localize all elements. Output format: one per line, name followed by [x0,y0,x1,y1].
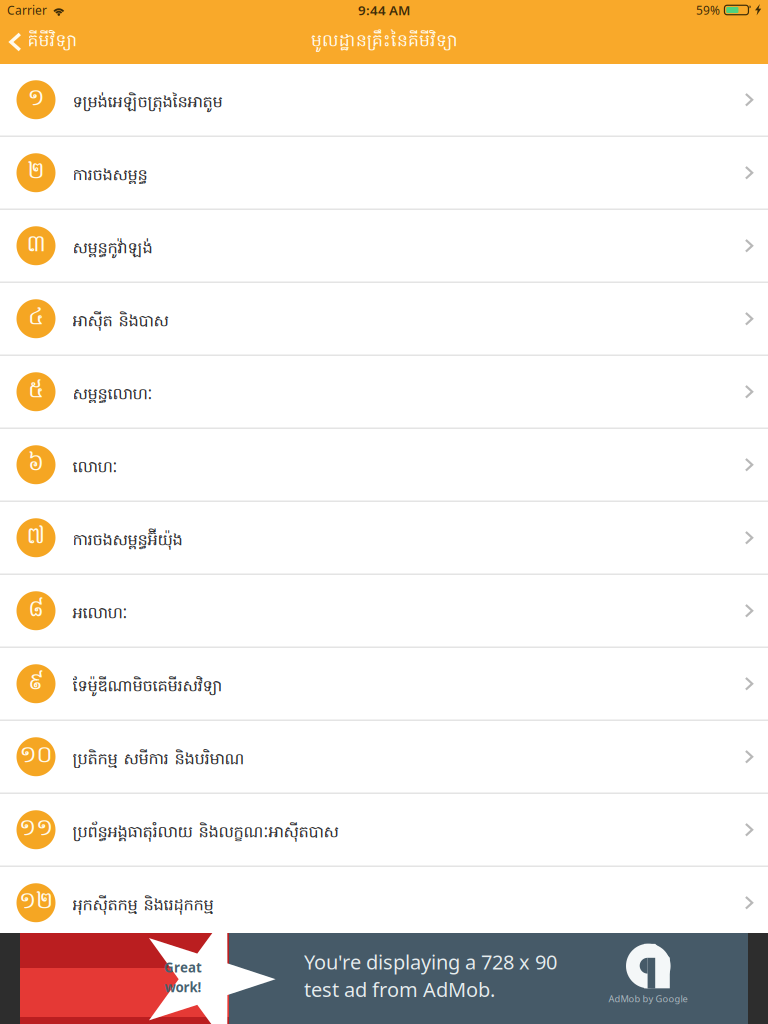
staticText: គីមីវិទ្យា [28,29,77,55]
button[interactable]: ៣ [0,210,768,283]
button[interactable]: ៤ [0,283,768,356]
staticText: មូលដ្ឋានគ្រឹះនៃគីមីវិទ្យា [311,29,457,55]
staticText: អលោហៈ [72,602,127,626]
button[interactable]: ៦ [0,429,768,502]
staticText: លោហៈ [72,456,117,480]
staticText: Great [164,958,202,976]
staticText: AdMob by Google [608,992,687,1005]
button[interactable]: ៥ [0,356,768,429]
button[interactable]: គីមីវិទ្យា [0,20,89,64]
staticText: ៤ [28,302,44,335]
staticText: អាស៊ីត និងបាស [72,310,168,334]
staticText: ៩ [28,667,44,700]
button[interactable]: ១ [0,64,768,137]
staticText: ២ [27,156,44,189]
button[interactable]: ៧ [0,502,768,575]
staticText: 59% [696,2,720,18]
button[interactable]: ៨ [0,575,768,648]
button[interactable]: ២ [0,137,768,210]
button[interactable]: ៩ [0,648,768,721]
staticText: 9:44 AM [358,1,410,19]
staticText: សម្ពន្ធលោហៈ [72,383,152,407]
button[interactable]: ១០ [0,721,768,794]
staticText: អុកស៊ីតកម្ម និងរេដុកកម្ម [72,894,213,918]
staticText: ១១ [19,813,53,846]
staticText: ការចងសម្ពន្ធ [72,164,147,188]
staticText: ទម្រង់អេឡិចត្រុងនៃអាតូម [72,91,222,115]
staticText: ៥ [28,375,44,408]
staticText: ការចងសម្ពន្ធអ៊ីយ៉ុង [72,529,182,553]
staticText: ១២ [19,886,53,919]
staticText: ៦ [28,448,44,481]
button[interactable]: ១១ [0,794,768,867]
staticText: ១០ [19,740,52,773]
staticText: ទែម៉ូឌីណាមិចគេមីរសវិទ្យា [72,675,222,699]
staticText: ១ [27,83,44,116]
staticText: ៣ [26,229,45,262]
staticText: Carrier [7,2,47,18]
staticText: ប្រតិកម្ម សមីការ និងបរិមាណ [72,748,244,772]
staticText: ៨ [28,594,44,627]
button[interactable]: ១២ [0,867,768,940]
staticText: ប្រព័ន្ធអង្គធាតុរំលាយ និងលក្ខណៈអាស៊ីតបាស [72,821,338,845]
staticText: សម្ពន្ធកូវ៉ាឡង់ [72,237,152,261]
staticText: ៧ [26,521,45,554]
staticText: work! [164,978,201,996]
staticText: You're displaying a 728 x 90 [304,948,557,975]
staticText: test ad from AdMob. [304,976,495,1003]
